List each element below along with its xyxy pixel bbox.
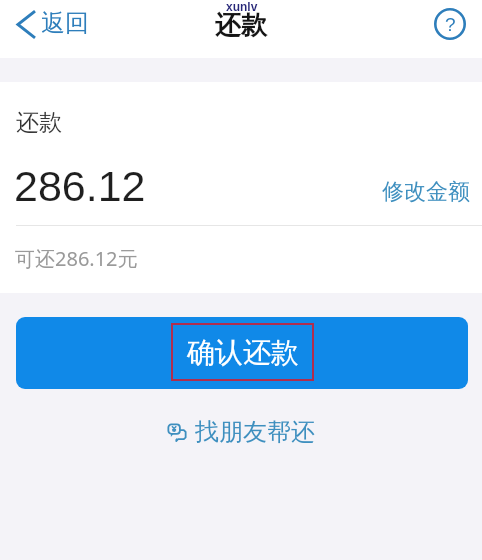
- staticText: 可还286.12元: [15, 245, 138, 272]
- staticText: 286.12: [14, 162, 146, 210]
- staticText: 找朋友帮还: [195, 417, 315, 447]
- staticText: ?: [445, 14, 456, 35]
- button[interactable]: Back: [10, 1, 99, 47]
- button[interactable]: 找朋友帮还: [160, 411, 323, 453]
- button[interactable]: 确认还款: [16, 317, 468, 389]
- staticText: 还款: [215, 9, 267, 42]
- staticText: 返回: [41, 8, 89, 38]
- button[interactable]: Help: [432, 6, 468, 42]
- button[interactable]: 修改金额: [378, 175, 474, 209]
- staticText: 修改金额: [382, 178, 470, 206]
- staticText: xunlv: [226, 0, 258, 13]
- staticText: 确认还款: [187, 335, 299, 370]
- staticText: 还款: [16, 108, 62, 137]
